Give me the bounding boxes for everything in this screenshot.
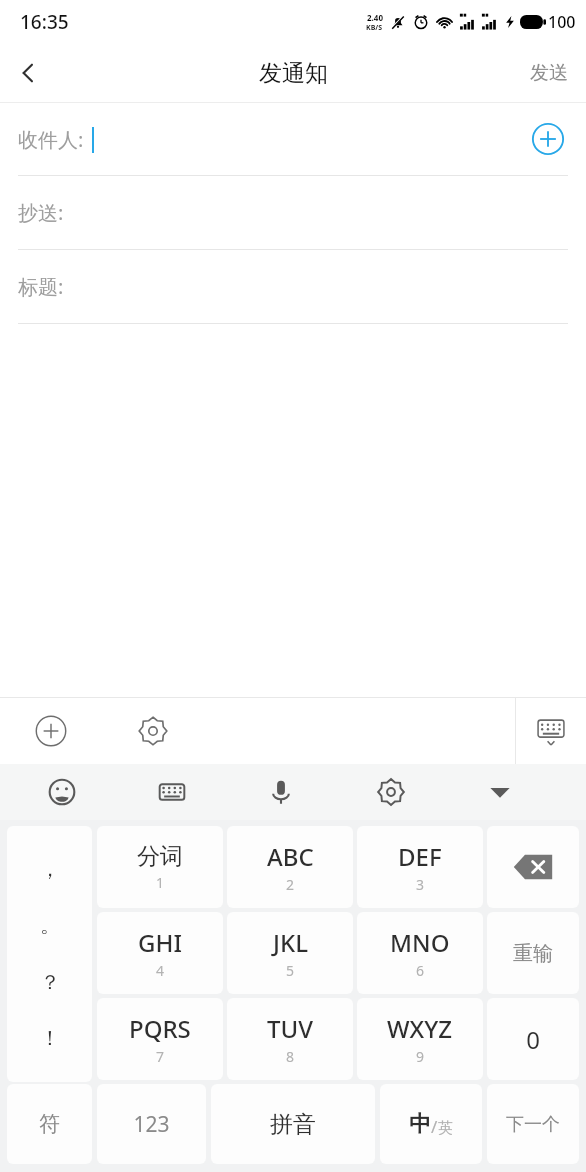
- staticText: 9: [416, 1047, 425, 1066]
- button[interactable]: PQRS: [97, 998, 223, 1080]
- button[interactable]: 符: [7, 1084, 92, 1164]
- button[interactable]: Voice input: [255, 766, 307, 818]
- button[interactable]: 抄送:: [0, 176, 586, 249]
- staticText: ，: [40, 857, 60, 882]
- staticText: 发通知: [259, 59, 328, 88]
- staticText: 0: [526, 1023, 540, 1056]
- button[interactable]: WXYZ: [357, 998, 483, 1080]
- staticText: JKL: [273, 926, 308, 959]
- staticText: 3: [416, 875, 425, 894]
- staticText: 2.40: [367, 12, 383, 23]
- staticText: 分词: [137, 842, 183, 871]
- staticText: TUV: [267, 1012, 313, 1045]
- staticText: ？: [40, 970, 60, 995]
- staticText: 重输: [513, 941, 553, 966]
- staticText: ABC: [267, 840, 314, 873]
- staticText: 4: [156, 961, 165, 980]
- button[interactable]: Attach: [0, 698, 102, 764]
- staticText: 2: [286, 875, 295, 894]
- button[interactable]: 重输: [487, 912, 579, 994]
- button[interactable]: 拼音: [211, 1084, 375, 1164]
- staticText: 8: [286, 1047, 295, 1066]
- button[interactable]: DEF: [357, 826, 483, 908]
- button[interactable]: 123: [97, 1084, 206, 1164]
- button[interactable]: MNO: [357, 912, 483, 994]
- staticText: 。: [40, 913, 60, 938]
- button[interactable]: 分词: [97, 826, 223, 908]
- button[interactable]: Hide keyboard: [516, 698, 586, 764]
- button[interactable]: 发送: [512, 44, 586, 102]
- button[interactable]: 0: [487, 998, 579, 1080]
- button[interactable]: Add recipient: [528, 119, 568, 159]
- staticText: 英: [438, 1119, 453, 1138]
- button[interactable]: 中: [380, 1084, 482, 1164]
- staticText: 16:35: [20, 9, 69, 35]
- staticText: MNO: [390, 926, 450, 959]
- staticText: 抄送:: [18, 199, 64, 226]
- staticText: 123: [133, 1110, 170, 1139]
- button[interactable]: Input settings: [365, 766, 417, 818]
- button[interactable]: Hide input: [474, 766, 526, 818]
- staticText: ！: [40, 1026, 60, 1051]
- button[interactable]: Keyboard layout: [146, 766, 198, 818]
- staticText: 发送: [530, 61, 568, 85]
- staticText: /: [431, 1115, 438, 1138]
- button[interactable]: Back: [0, 45, 56, 101]
- button[interactable]: ABC: [227, 826, 353, 908]
- staticText: DEF: [398, 840, 442, 873]
- staticText: 拼音: [270, 1110, 316, 1139]
- button[interactable]: 收件人:: [0, 103, 586, 175]
- staticText: 1: [156, 873, 165, 892]
- staticText: PQRS: [129, 1012, 191, 1045]
- staticText: 中: [409, 1110, 431, 1138]
- button[interactable]: GHI: [97, 912, 223, 994]
- staticText: 5: [286, 961, 295, 980]
- button[interactable]: ，: [7, 826, 92, 1082]
- button[interactable]: 标题:: [0, 250, 586, 323]
- button[interactable]: 下一个: [487, 1084, 579, 1164]
- button[interactable]: JKL: [227, 912, 353, 994]
- button[interactable]: Emoji: [36, 766, 88, 818]
- staticText: 标题:: [18, 273, 64, 300]
- staticText: 6: [416, 961, 425, 980]
- staticText: KB/S: [366, 23, 383, 33]
- staticText: GHI: [138, 926, 182, 959]
- staticText: 100: [548, 11, 576, 33]
- staticText: WXYZ: [387, 1012, 453, 1045]
- button[interactable]: Backspace: [487, 826, 579, 908]
- staticText: 收件人:: [18, 126, 84, 153]
- staticText: 7: [156, 1047, 165, 1066]
- staticText: 符: [39, 1111, 60, 1137]
- button[interactable]: Settings: [102, 698, 204, 764]
- staticText: 下一个: [506, 1113, 560, 1136]
- button[interactable]: TUV: [227, 998, 353, 1080]
